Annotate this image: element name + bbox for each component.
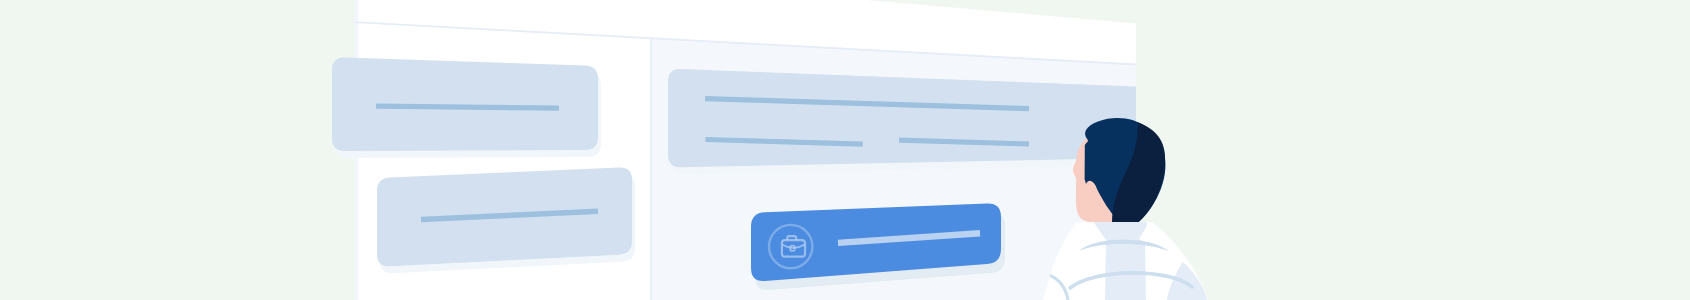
button[interactable]: Job search dashboard illustration bbox=[0, 0, 1690, 300]
